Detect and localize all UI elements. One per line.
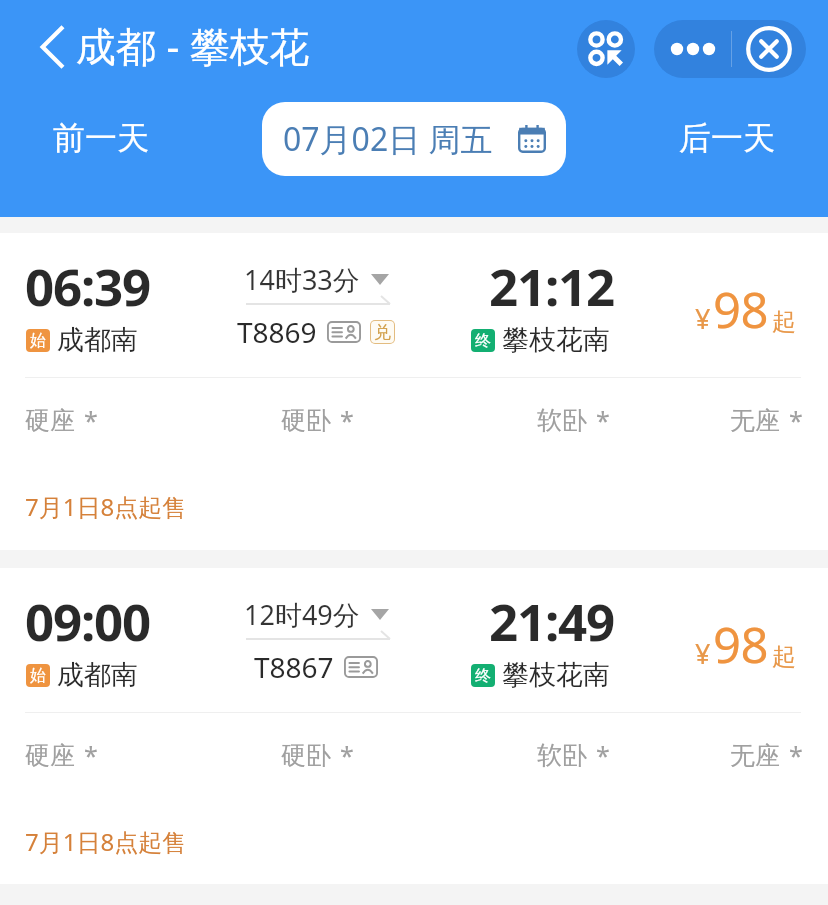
staticText: 硬座 bbox=[25, 740, 75, 771]
button[interactable]: 软卧 bbox=[537, 730, 610, 780]
staticText: 7月1日8点起售 bbox=[25, 490, 187, 523]
staticText: T8867 bbox=[254, 648, 334, 686]
staticText: 始 bbox=[30, 666, 46, 686]
staticText: 终 bbox=[475, 666, 491, 686]
staticText: 无座 bbox=[730, 405, 780, 436]
staticText: 21:12 bbox=[489, 251, 615, 320]
staticText: 攀枝花南 bbox=[502, 658, 610, 692]
button[interactable]: 无座 bbox=[730, 395, 803, 445]
staticText: 始 bbox=[30, 331, 46, 351]
button[interactable]: 硬座 bbox=[25, 730, 98, 780]
staticText: 成都南 bbox=[57, 658, 138, 692]
button[interactable]: 软卧 bbox=[537, 395, 610, 445]
staticText: 07月02日 周五 bbox=[283, 117, 493, 161]
staticText: 98 bbox=[713, 276, 769, 343]
staticText: 无座 bbox=[730, 740, 780, 771]
staticText: 成都南 bbox=[57, 323, 138, 357]
staticText: 起 bbox=[772, 307, 796, 337]
staticText: * bbox=[789, 403, 803, 437]
staticText: 软卧 bbox=[537, 740, 587, 771]
button[interactable]: 硬卧 bbox=[281, 730, 354, 780]
staticText: 21:49 bbox=[489, 586, 615, 655]
staticText: 成都 - 攀枝花 bbox=[76, 18, 310, 73]
button[interactable]: Mini program menu bbox=[577, 20, 635, 78]
staticText: ¥ bbox=[695, 300, 711, 337]
staticText: * bbox=[596, 403, 610, 437]
staticText: 硬卧 bbox=[281, 740, 331, 771]
other: Back bbox=[36, 24, 66, 70]
button[interactable]: 后一天 bbox=[626, 104, 828, 172]
button[interactable]: More options bbox=[654, 20, 731, 78]
staticText: 攀枝花南 bbox=[502, 323, 610, 357]
button[interactable]: 09:00 bbox=[0, 568, 828, 885]
staticText: 后一天 bbox=[679, 118, 775, 158]
staticText: * bbox=[340, 738, 354, 772]
staticText: 起 bbox=[772, 642, 796, 672]
button[interactable]: 硬卧 bbox=[281, 395, 354, 445]
staticText: * bbox=[596, 738, 610, 772]
button[interactable]: Back bbox=[36, 13, 310, 77]
button[interactable]: 07月02日 周五 bbox=[262, 102, 566, 176]
staticText: * bbox=[789, 738, 803, 772]
staticText: 12时49分 bbox=[244, 596, 360, 633]
staticText: 软卧 bbox=[537, 405, 587, 436]
staticText: 终 bbox=[475, 331, 491, 351]
staticText: 09:00 bbox=[25, 586, 151, 655]
staticText: * bbox=[340, 403, 354, 437]
staticText: 硬卧 bbox=[281, 405, 331, 436]
button[interactable]: 硬座 bbox=[25, 395, 98, 445]
staticText: * bbox=[84, 403, 98, 437]
staticText: 98 bbox=[713, 611, 769, 678]
staticText: ¥ bbox=[695, 635, 711, 672]
staticText: 14时33分 bbox=[244, 261, 360, 298]
staticText: 硬座 bbox=[25, 405, 75, 436]
button[interactable]: Close bbox=[732, 20, 806, 78]
staticText: 06:39 bbox=[25, 251, 151, 320]
staticText: * bbox=[84, 738, 98, 772]
button[interactable]: 无座 bbox=[730, 730, 803, 780]
button[interactable]: 06:39 bbox=[0, 233, 828, 550]
staticText: 7月1日8点起售 bbox=[25, 825, 187, 858]
staticText: 兑 bbox=[374, 322, 391, 343]
button[interactable]: 前一天 bbox=[0, 104, 202, 172]
staticText: 前一天 bbox=[53, 118, 149, 158]
staticText: T8869 bbox=[237, 313, 317, 351]
